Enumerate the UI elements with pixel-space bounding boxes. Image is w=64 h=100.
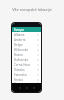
- staticText: Bělorusko: [14, 48, 29, 52]
- staticText: Andorra: [14, 38, 26, 42]
- staticText: Bulharsko: [14, 58, 29, 62]
- staticText: Albánie: [14, 33, 25, 37]
- button[interactable]: Francie: [12, 82, 41, 83]
- button[interactable]: Finsko: [12, 77, 41, 82]
- staticText: Vše evropské lokacije: [0, 7, 64, 12]
- button[interactable]: Bělorusko: [12, 47, 41, 52]
- staticText: Dánsko: [14, 68, 25, 72]
- button[interactable]: Estonsko: [12, 72, 41, 77]
- staticText: Finsko: [14, 78, 24, 82]
- staticText: Estonsko: [14, 73, 27, 77]
- staticText: Černá Hora: [14, 63, 31, 67]
- button[interactable]: Bulharsko: [12, 57, 41, 62]
- staticText: Evropa: [14, 28, 24, 32]
- button[interactable]: Bosna: [12, 52, 41, 57]
- staticText: Bosna: [14, 53, 23, 57]
- staticText: Francie: [14, 82, 25, 83]
- button[interactable]: Dánsko: [12, 67, 41, 72]
- staticText: Belgie: [14, 43, 23, 47]
- button[interactable]: Belgie: [12, 42, 41, 47]
- button[interactable]: Andorra: [12, 37, 41, 42]
- button[interactable]: Albánie: [12, 32, 41, 37]
- button[interactable]: Černá Hora: [12, 62, 41, 67]
